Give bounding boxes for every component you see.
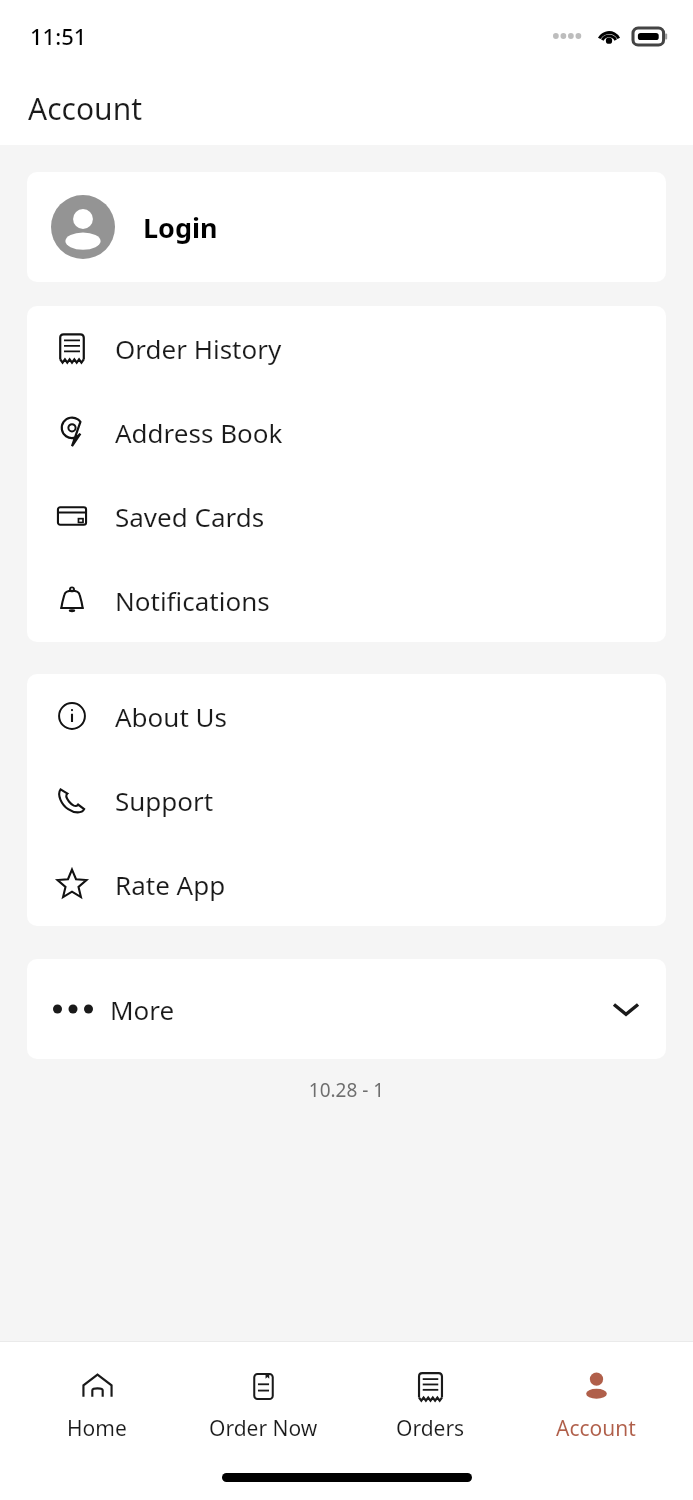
button[interactable]: About Us (27, 674, 666, 758)
staticText: Home (67, 1414, 127, 1443)
staticText: Notifications (115, 583, 270, 618)
staticText: Order Now (209, 1414, 318, 1443)
button[interactable]: Home (27, 1364, 167, 1447)
button[interactable]: Order History (27, 306, 666, 390)
staticText: Support (115, 783, 214, 818)
button[interactable]: Address Book (27, 390, 666, 474)
staticText: Login (143, 209, 218, 246)
staticText: Rate App (115, 867, 226, 902)
button[interactable]: Account (526, 1364, 666, 1447)
staticText: 10.28 - 1 (0, 1077, 693, 1103)
staticText: 11:51 (30, 21, 87, 51)
staticText: Order History (115, 331, 282, 366)
staticText: Account (28, 88, 143, 129)
staticText: Orders (396, 1414, 465, 1443)
staticText: Address Book (115, 415, 283, 450)
button[interactable]: Rate App (27, 842, 666, 926)
button[interactable]: Login (27, 172, 666, 282)
button[interactable]: More (27, 959, 666, 1059)
staticText: About Us (115, 699, 228, 734)
button[interactable]: Order Now (193, 1364, 333, 1447)
staticText: Account (556, 1414, 636, 1443)
staticText: More (110, 992, 175, 1027)
button[interactable]: Notifications (27, 558, 666, 642)
staticText: Saved Cards (115, 499, 265, 534)
button[interactable]: Saved Cards (27, 474, 666, 558)
button[interactable]: Support (27, 758, 666, 842)
button[interactable]: Orders (360, 1364, 500, 1447)
